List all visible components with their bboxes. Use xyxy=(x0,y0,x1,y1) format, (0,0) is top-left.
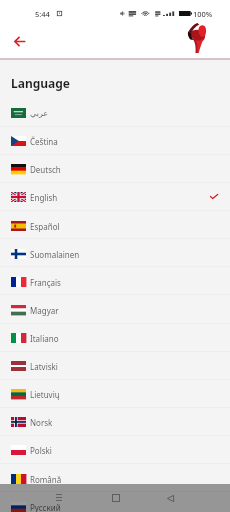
staticText: 100% xyxy=(193,9,213,19)
staticText: Español xyxy=(30,221,60,232)
staticText: 5:44 xyxy=(35,9,50,19)
staticText: Polski xyxy=(30,445,52,456)
staticText: Français xyxy=(30,277,61,288)
button[interactable]: Back xyxy=(8,30,30,52)
button[interactable]: Magyar xyxy=(0,295,230,323)
staticText: Română xyxy=(30,474,62,485)
staticText: Русский xyxy=(30,502,61,512)
staticText: Italiano xyxy=(30,333,59,344)
staticText: English xyxy=(30,192,58,203)
staticText: Magyar xyxy=(30,305,59,316)
button[interactable]: Polski xyxy=(0,435,230,463)
staticText: Norsk xyxy=(30,417,53,428)
button[interactable]: Français xyxy=(0,267,230,295)
button[interactable]: Deutsch xyxy=(0,154,230,182)
button[interactable]: Español xyxy=(0,211,230,239)
button[interactable]: Back xyxy=(158,487,182,509)
button[interactable]: Home xyxy=(104,487,128,509)
button[interactable]: Русский xyxy=(0,492,230,512)
button[interactable]: Suomalainen xyxy=(0,239,230,267)
staticText: Suomalainen xyxy=(30,249,80,260)
button[interactable]: Čeština xyxy=(0,126,230,154)
button[interactable]: Recent apps xyxy=(47,486,71,508)
button[interactable]: Italiano xyxy=(0,323,230,351)
button[interactable]: Latviski xyxy=(0,351,230,379)
button[interactable]: Română xyxy=(0,464,230,492)
staticText: Deutsch xyxy=(30,164,61,175)
staticText: Latviski xyxy=(30,361,58,372)
button[interactable]: Lietuvių xyxy=(0,379,230,407)
staticText: Čeština xyxy=(30,136,58,147)
staticText: عربي xyxy=(30,109,49,118)
staticText: Language xyxy=(11,75,71,91)
button[interactable]: Norsk xyxy=(0,407,230,435)
button[interactable]: English xyxy=(0,182,230,210)
button[interactable]: عربي xyxy=(0,98,230,126)
staticText: Lietuvių xyxy=(30,389,60,400)
